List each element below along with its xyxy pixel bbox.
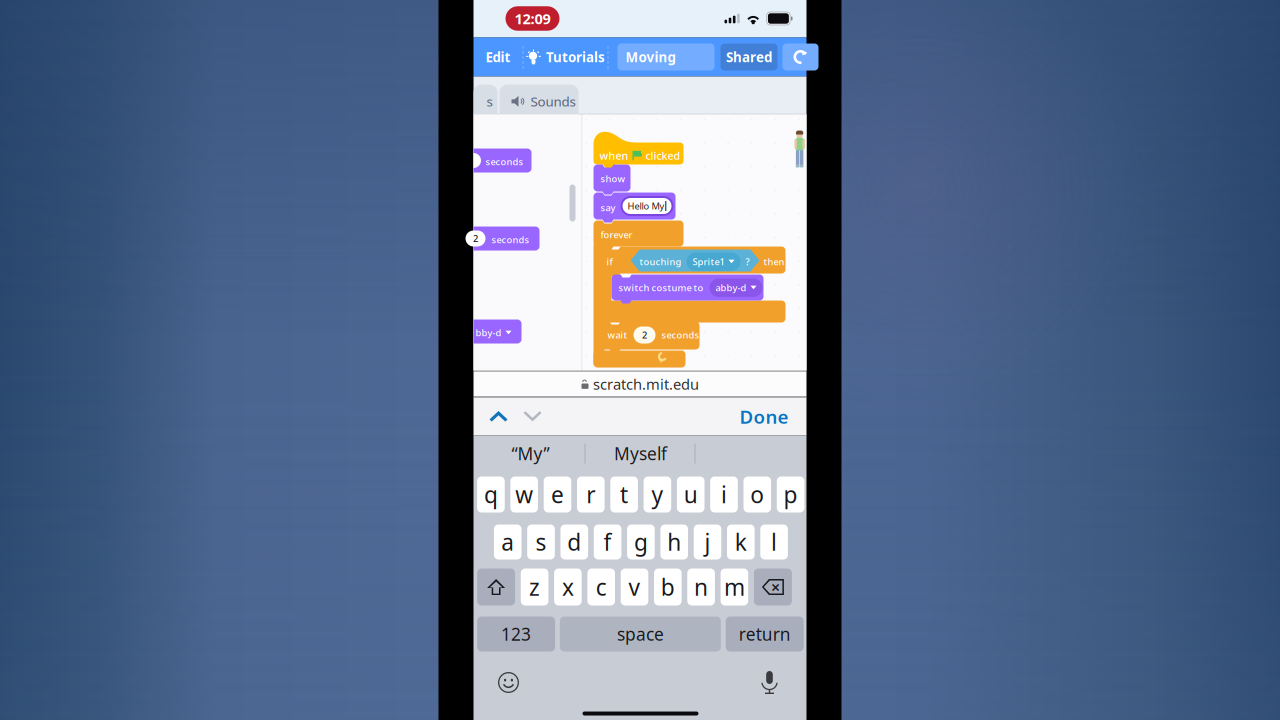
- staticText: 12:09: [514, 9, 550, 28]
- staticText: touching: [639, 255, 681, 268]
- staticText: if: [606, 255, 612, 268]
- staticText: s: [486, 92, 492, 110]
- button[interactable]: space: [560, 616, 721, 651]
- staticText: Myself: [614, 442, 667, 465]
- button[interactable]: p: [777, 476, 804, 512]
- staticText: k: [735, 527, 747, 557]
- button[interactable]: j: [694, 524, 721, 559]
- staticText: y: [651, 479, 663, 509]
- staticText: m: [724, 572, 745, 602]
- button[interactable]: Delete: [754, 568, 792, 605]
- button[interactable]: u: [677, 476, 704, 512]
- staticText: say: [600, 201, 615, 214]
- staticText: abby-d: [715, 281, 746, 294]
- button[interactable]: h: [660, 524, 688, 559]
- staticText: g: [634, 527, 648, 557]
- staticText: Hello My: [628, 200, 665, 212]
- button[interactable]: Edit: [473, 37, 522, 76]
- button[interactable]: s: [473, 84, 497, 114]
- staticText: seconds: [485, 155, 523, 168]
- staticText: Shared: [726, 48, 772, 66]
- staticText: bby-d: [475, 326, 501, 339]
- staticText: Done: [739, 404, 788, 429]
- button[interactable]: b: [654, 568, 682, 605]
- button[interactable]: Moving: [617, 43, 714, 70]
- staticText: scratch.mit.edu: [593, 374, 699, 394]
- staticText: v: [628, 572, 640, 602]
- staticText: u: [684, 479, 698, 509]
- button[interactable]: return: [726, 616, 804, 651]
- button[interactable]: Previous field: [481, 397, 515, 435]
- staticText: “My”: [511, 442, 549, 465]
- button[interactable]: q: [477, 476, 505, 512]
- staticText: Moving: [625, 48, 675, 66]
- staticText: wait: [607, 329, 627, 341]
- staticText: when: [599, 148, 628, 163]
- button[interactable]: Myself: [585, 435, 695, 471]
- staticText: show: [600, 172, 625, 185]
- button[interactable]: w: [510, 476, 538, 512]
- button[interactable]: t: [610, 476, 638, 512]
- staticText: n: [694, 572, 708, 602]
- button[interactable]: “My”: [476, 435, 584, 471]
- button[interactable]: Emoji: [493, 667, 523, 697]
- staticText: e: [551, 479, 564, 509]
- button[interactable]: l: [760, 524, 788, 559]
- button[interactable]: z: [521, 568, 548, 605]
- staticText: h: [667, 527, 681, 557]
- staticText: 123: [501, 622, 531, 645]
- staticText: ?: [745, 255, 749, 268]
- button[interactable]: See Project Page: [782, 43, 818, 70]
- button[interactable]: Shared: [720, 43, 777, 70]
- button[interactable]: c: [587, 568, 615, 605]
- staticText: then: [763, 255, 784, 268]
- staticText: r: [586, 479, 595, 509]
- staticText: b: [661, 572, 675, 602]
- button[interactable]: d: [560, 524, 588, 559]
- button[interactable]: y: [644, 476, 671, 512]
- button[interactable]: i: [710, 476, 738, 512]
- button[interactable]: n: [687, 568, 715, 605]
- staticText: switch costume to: [618, 281, 703, 294]
- staticText: a: [501, 527, 514, 557]
- staticText: j: [704, 527, 710, 557]
- button[interactable]: x: [554, 568, 582, 605]
- button[interactable]: Tutorials: [523, 37, 607, 76]
- staticText: x: [562, 572, 574, 602]
- button[interactable]: r: [577, 476, 605, 512]
- staticText: l: [771, 527, 777, 557]
- button[interactable]: e: [544, 476, 571, 512]
- staticText: seconds: [661, 329, 699, 341]
- staticText: clicked: [645, 148, 680, 163]
- button[interactable]: v: [621, 568, 648, 605]
- staticText: 2: [473, 232, 478, 245]
- button[interactable]: m: [721, 568, 748, 605]
- staticText: Sounds: [530, 92, 575, 110]
- button[interactable]: g: [627, 524, 655, 559]
- button[interactable]: Dictation: [756, 666, 782, 696]
- staticText: Tutorials: [546, 48, 605, 66]
- button[interactable]: o: [743, 476, 771, 512]
- button[interactable]: f: [594, 524, 621, 559]
- button[interactable]: Shift: [477, 568, 515, 605]
- staticText: forever: [600, 228, 632, 241]
- staticText: c: [596, 572, 607, 602]
- staticText: i: [721, 479, 727, 509]
- button[interactable]: a: [494, 524, 521, 559]
- button[interactable]: k: [727, 524, 755, 559]
- button[interactable]: Done: [729, 397, 798, 435]
- staticText: w: [515, 479, 533, 509]
- staticText: 2: [642, 329, 647, 341]
- staticText: space: [617, 622, 664, 645]
- button[interactable]: Sounds: [499, 84, 578, 114]
- staticText: seconds: [491, 233, 529, 246]
- staticText: t: [620, 479, 628, 509]
- button[interactable]: 123: [477, 616, 555, 651]
- button[interactable]: s: [527, 524, 555, 559]
- staticText: return: [739, 622, 791, 645]
- staticText: z: [529, 572, 540, 602]
- staticText: p: [784, 479, 798, 509]
- button[interactable]: Next field: [515, 397, 549, 435]
- staticText: Sprite1: [692, 255, 724, 268]
- staticText: Edit: [485, 48, 510, 66]
